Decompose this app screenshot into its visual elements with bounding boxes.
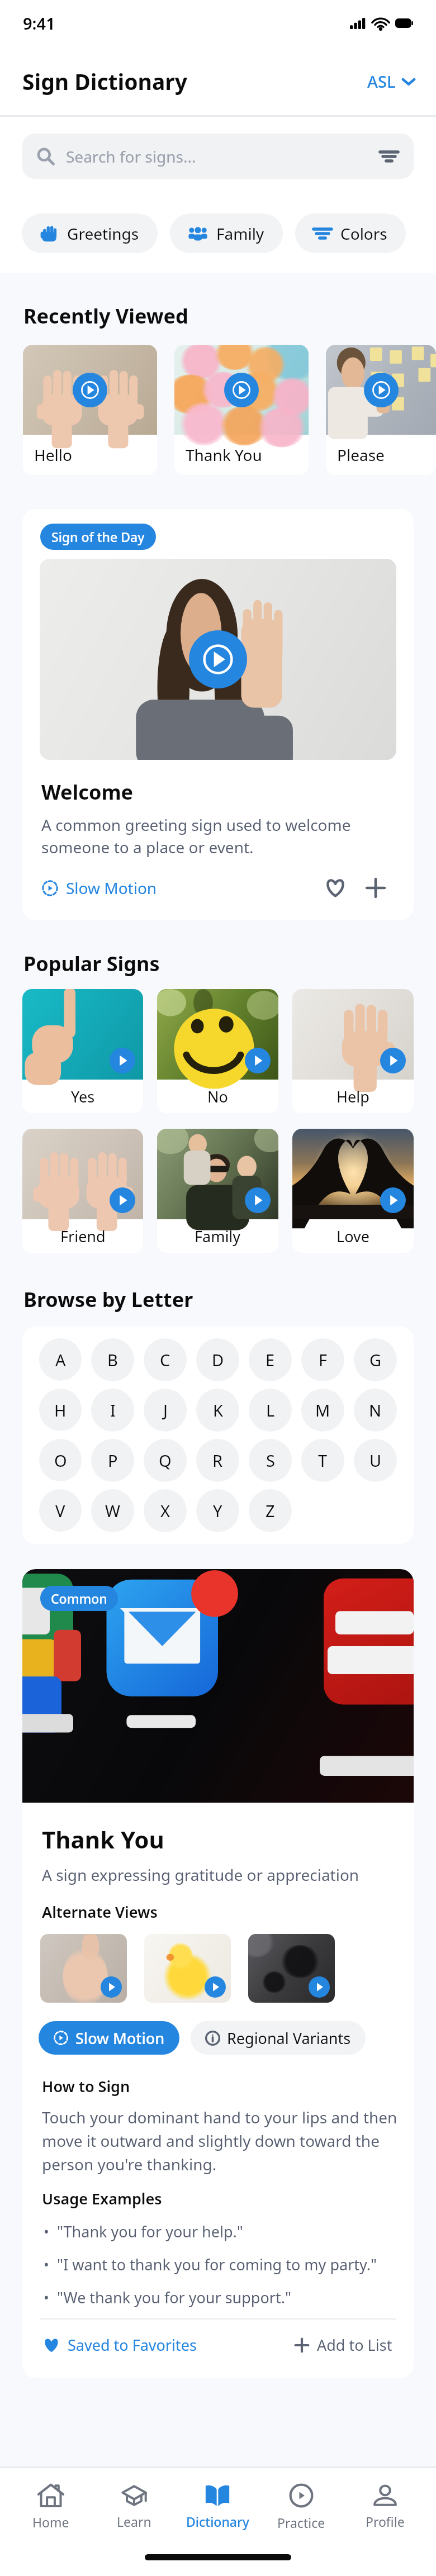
staticText: "I want to thank you for coming to my pa…	[57, 2254, 377, 2275]
button[interactable]: Play sign video	[22, 1129, 143, 1253]
staticText: Learn	[117, 2513, 151, 2530]
button[interactable]: Y	[196, 1489, 239, 1532]
button[interactable]: Dictionary	[176, 2468, 259, 2546]
staticText: Q	[159, 1449, 172, 1471]
button[interactable]: Play sign video	[157, 1129, 278, 1253]
button[interactable]: Play sign video	[292, 989, 414, 1113]
staticText: W	[105, 1500, 120, 1522]
button[interactable]: Play sign video	[245, 1187, 271, 1213]
button[interactable]: Add to List	[291, 2331, 395, 2359]
button[interactable]: W	[91, 1489, 134, 1532]
button[interactable]: Play sign video	[205, 1976, 226, 1998]
button[interactable]: U	[354, 1439, 397, 1482]
button[interactable]: Play sign video	[110, 1187, 135, 1213]
button[interactable]: E	[249, 1338, 292, 1381]
staticText: Colors	[340, 223, 387, 244]
button[interactable]: Practice	[259, 2468, 343, 2546]
button[interactable]: Add to list	[361, 873, 390, 902]
button[interactable]: Play sign video	[326, 345, 436, 475]
staticText: P	[108, 1449, 118, 1471]
button[interactable]: Sign of the Day	[22, 509, 414, 920]
staticText: H	[54, 1399, 67, 1421]
button[interactable]: Search for signs...	[22, 134, 414, 179]
button[interactable]: Regional Variants	[191, 2021, 366, 2055]
button[interactable]: Profile	[343, 2468, 427, 2546]
button[interactable]: Play sign video	[73, 373, 107, 407]
button[interactable]: P	[91, 1439, 134, 1482]
button[interactable]: Play sign video	[292, 1129, 414, 1253]
staticText: Add to List	[317, 2335, 392, 2355]
button[interactable]: Colors	[295, 213, 406, 253]
button[interactable]: C	[144, 1338, 187, 1381]
staticText: G	[369, 1349, 382, 1371]
button[interactable]: Learn	[92, 2468, 176, 2546]
button[interactable]: Play sign video	[245, 1048, 271, 1073]
button[interactable]: Family	[170, 213, 283, 253]
button[interactable]: V	[39, 1489, 82, 1532]
button[interactable]: ASL	[364, 67, 418, 96]
button[interactable]: S	[249, 1439, 292, 1482]
button[interactable]: Play sign video	[364, 373, 399, 407]
button[interactable]: B	[91, 1338, 134, 1381]
button[interactable]: K	[196, 1389, 239, 1432]
staticText: •	[44, 2221, 49, 2241]
button[interactable]: Play sign video	[22, 989, 143, 1113]
button[interactable]: Play sign video	[23, 345, 157, 475]
button[interactable]: Play sign video	[174, 345, 309, 475]
staticText: Recently Viewed	[23, 302, 188, 330]
staticText: R	[212, 1449, 223, 1471]
button[interactable]: Play sign video	[189, 630, 247, 688]
button[interactable]: Play sign video	[309, 1976, 330, 1998]
staticText: Family	[195, 1226, 241, 1247]
button[interactable]: M	[301, 1389, 344, 1432]
button[interactable]: I	[91, 1389, 134, 1432]
button[interactable]: R	[196, 1439, 239, 1482]
staticText: M	[315, 1399, 330, 1421]
button[interactable]: X	[144, 1489, 187, 1532]
button[interactable]: Play sign video	[248, 1934, 335, 2003]
button[interactable]: Z	[249, 1489, 292, 1532]
button[interactable]: N	[354, 1389, 397, 1432]
staticText: 9:41	[23, 12, 55, 34]
staticText: "We thank you for your support."	[57, 2287, 291, 2308]
button[interactable]: Greetings	[22, 213, 158, 253]
staticText: Please	[337, 444, 385, 465]
button[interactable]: Slow Motion	[39, 874, 159, 902]
staticText: N	[369, 1399, 382, 1421]
button[interactable]: G	[354, 1338, 397, 1381]
button[interactable]: Saved to Favorites	[40, 2331, 199, 2359]
button[interactable]: Play sign video	[144, 1934, 231, 2003]
button[interactable]: J	[144, 1389, 187, 1432]
button[interactable]: T	[301, 1439, 344, 1482]
button[interactable]: Q	[144, 1439, 187, 1482]
button[interactable]: Favorite	[321, 873, 350, 902]
staticText: C	[160, 1349, 170, 1371]
button[interactable]: L	[249, 1389, 292, 1432]
button[interactable]: D	[196, 1338, 239, 1381]
staticText: J	[163, 1399, 168, 1421]
staticText: X	[160, 1500, 170, 1522]
staticText: Sign of the Day	[51, 528, 145, 545]
button[interactable]: Play sign video	[380, 1048, 406, 1073]
staticText: Family	[216, 223, 264, 244]
staticText: F	[319, 1349, 328, 1371]
button[interactable]: Play sign video	[224, 373, 259, 407]
button[interactable]: H	[39, 1389, 82, 1431]
staticText: K	[213, 1399, 223, 1421]
button[interactable]: A	[39, 1338, 82, 1381]
button[interactable]: Play sign video	[101, 1976, 122, 1998]
button[interactable]: F	[301, 1338, 344, 1381]
button[interactable]: Play sign video	[157, 989, 278, 1113]
staticText: Regional Variants	[227, 2028, 351, 2049]
staticText: A	[55, 1349, 66, 1371]
button[interactable]: O	[39, 1439, 82, 1481]
button[interactable]: Play sign video	[110, 1048, 135, 1073]
button[interactable]: Play sign video	[380, 1187, 406, 1213]
staticText: Saved to Favorites	[68, 2335, 197, 2355]
button[interactable]: Home	[9, 2468, 92, 2546]
staticText: Search for signs...	[66, 146, 380, 167]
staticText: Profile	[366, 2513, 405, 2530]
button[interactable]: Slow Motion	[39, 2021, 179, 2055]
staticText: Friend	[60, 1226, 106, 1247]
button[interactable]: Play sign video	[40, 1934, 127, 2003]
